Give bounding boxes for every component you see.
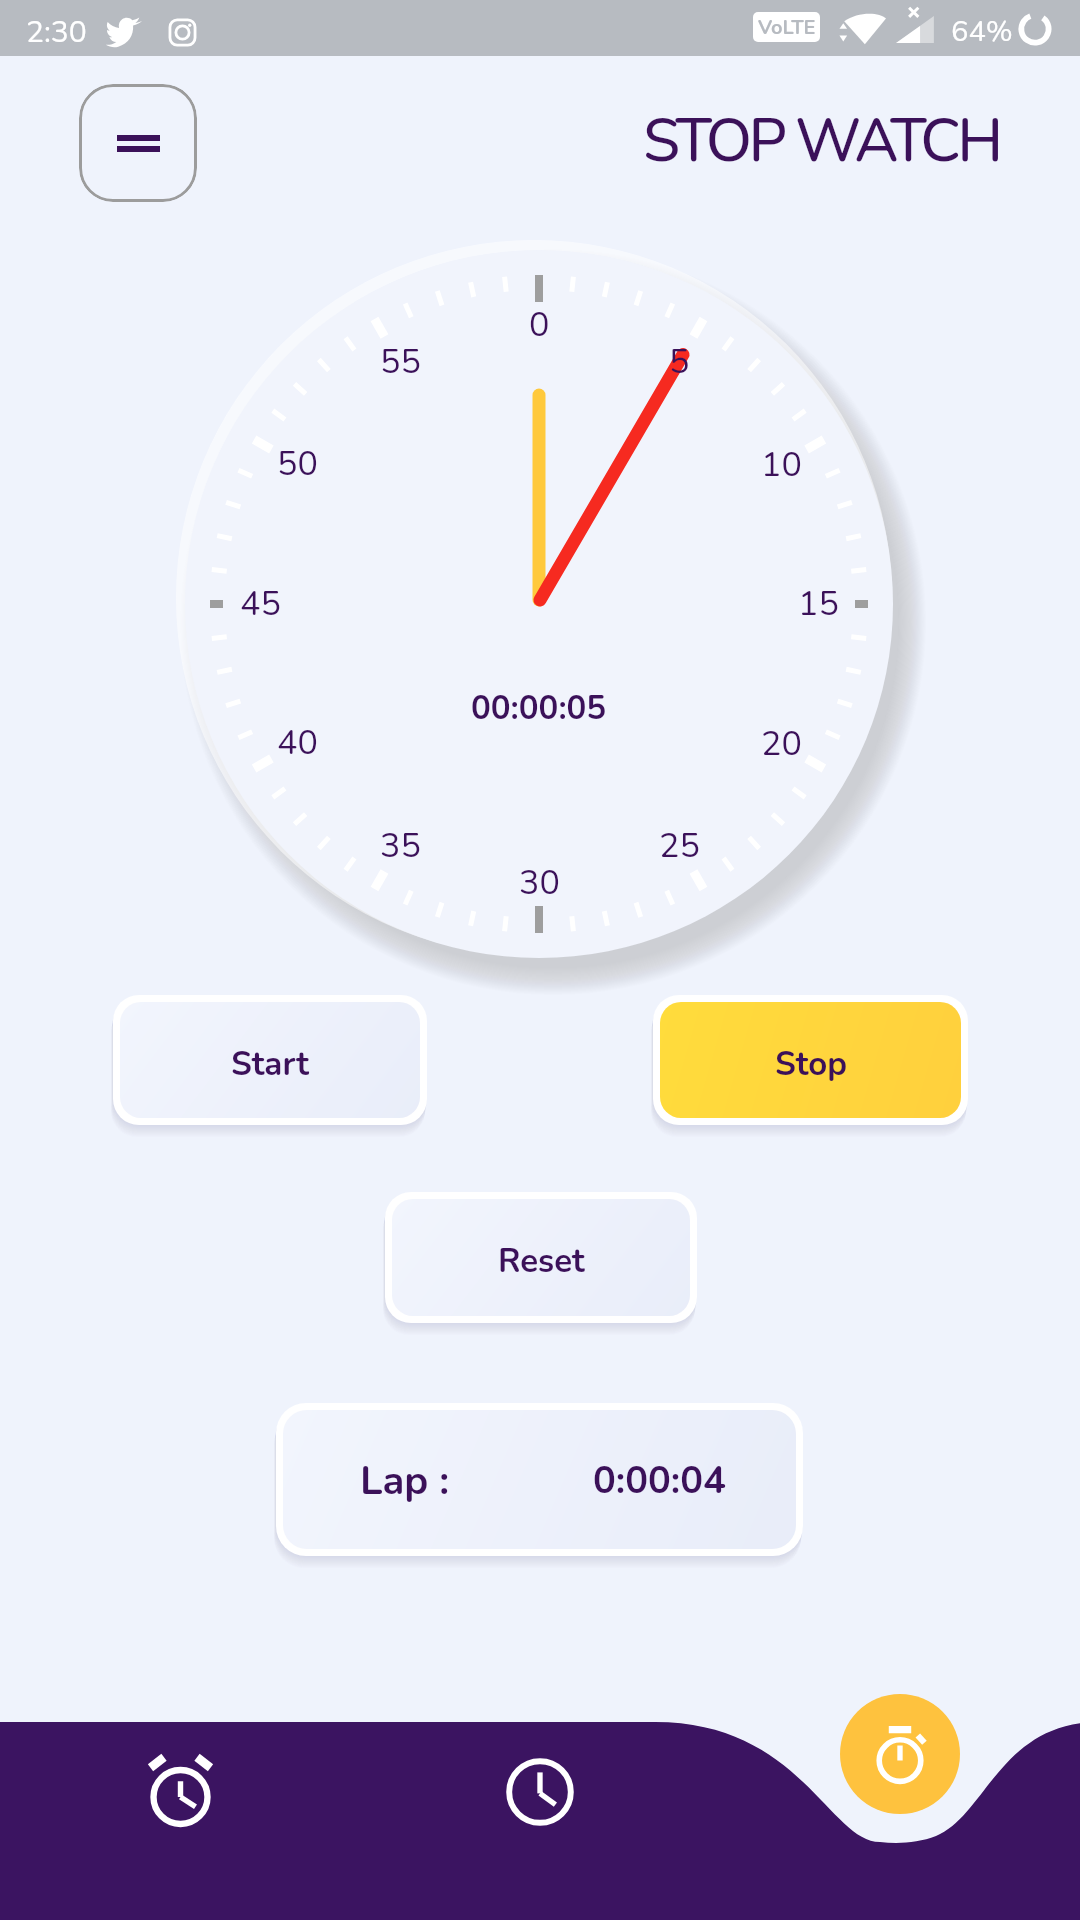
staticText: 2:30 xyxy=(26,12,87,53)
button[interactable]: Reset xyxy=(392,1199,690,1316)
staticText: 00:00:05 xyxy=(471,686,607,731)
staticText: 10 xyxy=(761,442,802,488)
staticText: 55 xyxy=(380,339,421,385)
staticText: 64% xyxy=(951,12,1013,52)
staticText: 5 xyxy=(669,339,690,385)
button[interactable]: Start xyxy=(120,1002,420,1118)
staticText: Reset xyxy=(498,1239,585,1284)
button[interactable]: Alarm xyxy=(120,1729,240,1849)
staticText: 45 xyxy=(240,581,281,627)
staticText: 25 xyxy=(659,823,700,869)
button[interactable]: Stop xyxy=(660,1002,961,1118)
staticText: Start xyxy=(231,1042,309,1087)
button[interactable]: Lap : xyxy=(283,1410,796,1549)
staticText: 15 xyxy=(798,581,839,627)
staticText: 0:00:04 xyxy=(593,1455,726,1507)
staticText: 30 xyxy=(519,860,560,906)
staticText: 0 xyxy=(529,302,550,348)
staticText: 40 xyxy=(277,720,318,766)
staticText: 35 xyxy=(380,823,421,869)
button[interactable]: Stopwatch xyxy=(840,1694,960,1814)
staticText: 20 xyxy=(761,721,802,767)
staticText: Lap : xyxy=(360,1454,450,1509)
staticText: 50 xyxy=(277,441,318,487)
button[interactable]: Clock xyxy=(480,1732,600,1852)
staticText: Stop xyxy=(775,1042,847,1087)
staticText: STOP WATCH xyxy=(643,100,1000,182)
staticText: VoLTE xyxy=(758,14,816,41)
button[interactable]: Menu xyxy=(79,84,197,202)
